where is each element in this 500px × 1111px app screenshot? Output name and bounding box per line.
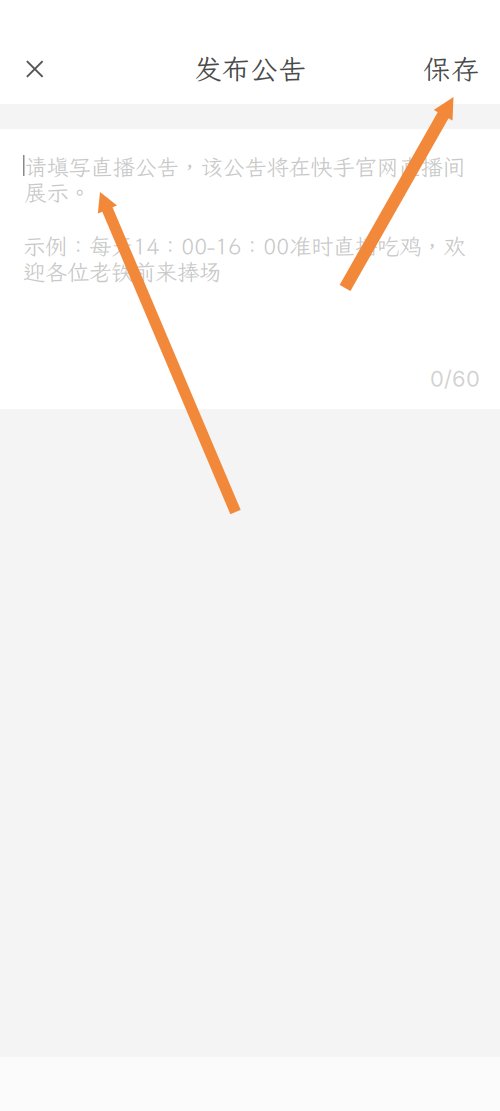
staticText: 请填写直播公告，该公告将在快手官网直播间展示。 bbox=[24, 154, 464, 205]
button[interactable]: 请填写直播公告，该公告将在快手官网直播间展示。 bbox=[0, 129, 500, 409]
staticText: 0/60 bbox=[430, 365, 480, 392]
button[interactable]: 保存 bbox=[400, 34, 500, 104]
button[interactable]: Close bbox=[0, 34, 70, 104]
staticText: 示例：每天14：00-16：00准时直播吃鸡，欢迎各位老铁前来捧场 bbox=[23, 233, 465, 285]
staticText: 发布公告 bbox=[194, 51, 306, 87]
staticText: 保存 bbox=[423, 51, 479, 87]
